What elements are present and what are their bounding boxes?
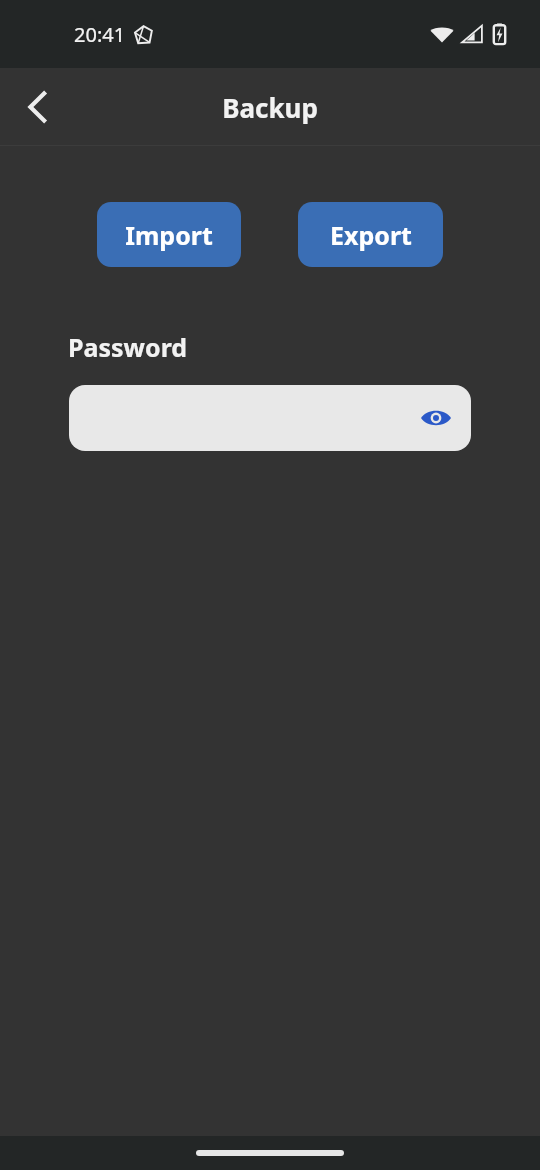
button[interactable]: Import (97, 202, 241, 267)
staticText: Password (68, 330, 188, 364)
button[interactable]: Back (12, 81, 64, 133)
staticText: 20:41 (74, 21, 126, 48)
button[interactable]: Export (298, 202, 443, 267)
staticText: Import (125, 218, 213, 252)
button[interactable]: Show password (69, 385, 471, 451)
staticText: Backup (222, 90, 318, 125)
button[interactable]: Show password (414, 396, 458, 440)
staticText: Export (330, 218, 412, 252)
